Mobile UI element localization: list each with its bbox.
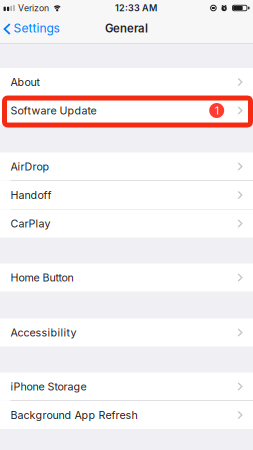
button[interactable]: Accessibility	[0, 318, 253, 346]
staticText: About	[10, 75, 39, 88]
button[interactable]: Software Update	[0, 96, 253, 124]
staticText: AirDrop	[10, 160, 49, 173]
button[interactable]: Settings	[0, 18, 59, 40]
button[interactable]: Home Button	[0, 263, 253, 291]
staticText: Accessibility	[10, 326, 76, 339]
staticText: 1	[215, 104, 219, 117]
staticText: Handoff	[10, 188, 51, 201]
button[interactable]: Background App Refresh	[0, 401, 253, 429]
button[interactable]: iPhone Storage	[0, 372, 253, 400]
button[interactable]: About	[0, 68, 253, 96]
staticText: iPhone Storage	[10, 380, 86, 393]
staticText: Settings	[13, 21, 59, 35]
staticText: CarPlay	[10, 217, 50, 230]
staticText: General	[105, 22, 148, 35]
staticText: 12:33 AM	[115, 2, 157, 13]
staticText: Verizon	[18, 3, 49, 13]
staticText: Background App Refresh	[10, 408, 137, 421]
button[interactable]: AirDrop	[0, 152, 253, 180]
staticText: Home Button	[10, 271, 73, 284]
button[interactable]: Handoff	[0, 181, 253, 209]
staticText: Software Update	[10, 104, 96, 117]
button[interactable]: CarPlay	[0, 209, 253, 237]
